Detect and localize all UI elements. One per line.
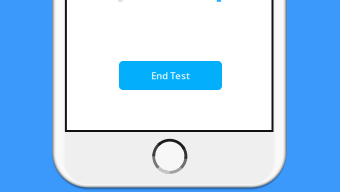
button[interactable]: End Test	[119, 61, 222, 90]
button[interactable]: Home	[152, 139, 187, 174]
staticText: End Test	[151, 69, 190, 82]
